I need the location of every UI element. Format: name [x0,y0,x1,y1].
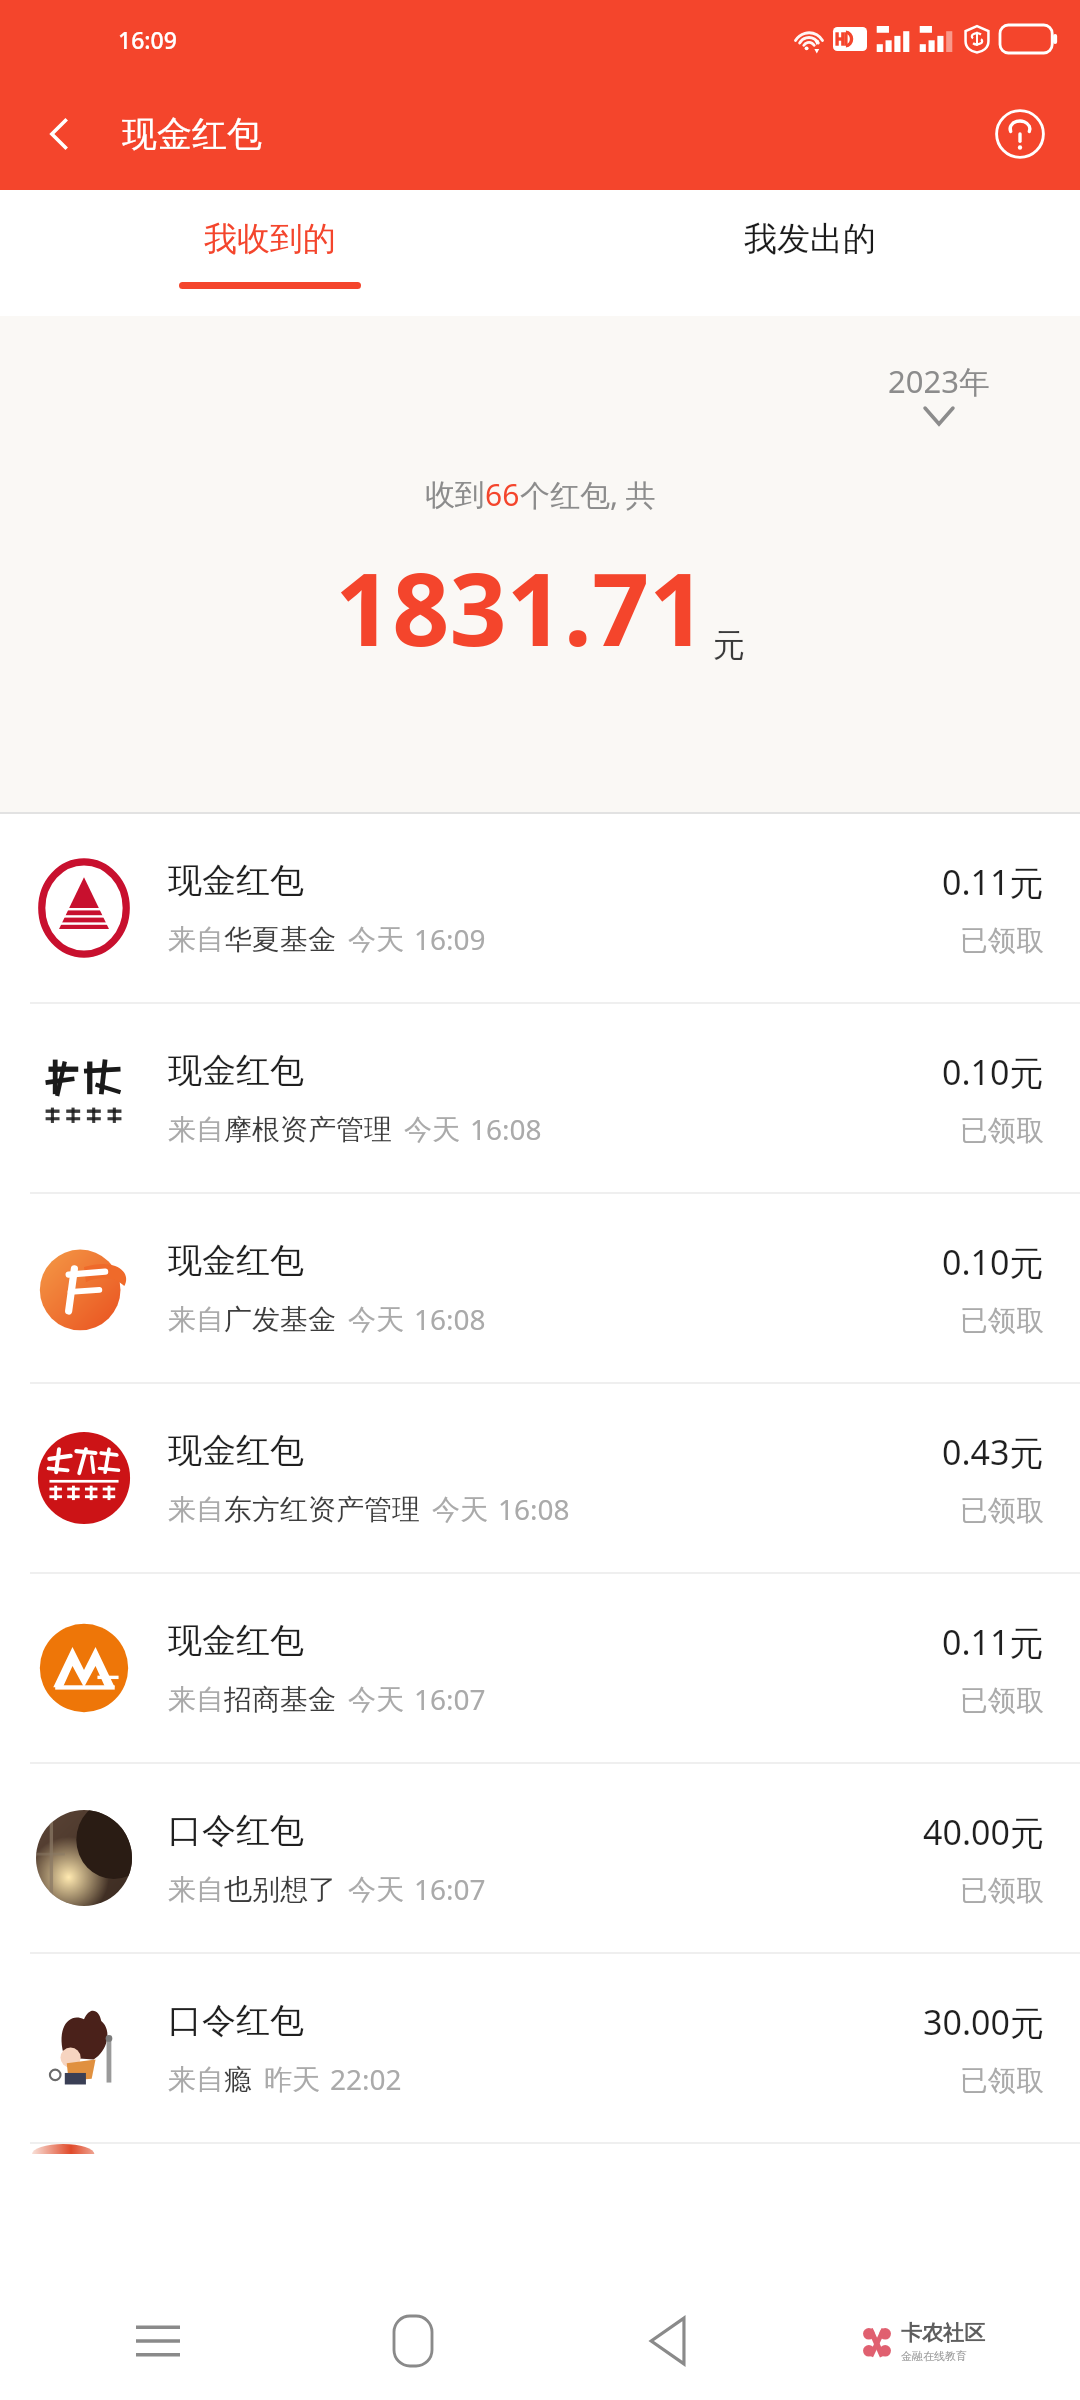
staticText: 今天 [404,1112,460,1147]
staticText: 今天 [348,1872,404,1907]
staticText: 收到 [425,476,485,514]
staticText: 来自 [168,922,224,957]
button[interactable]: 我发出的 [540,190,1080,316]
staticText: 今天 [432,1492,488,1527]
staticText: 东方红资产管理 [224,1492,420,1527]
staticText: 0.11元 [942,859,1044,905]
staticText: 来自 [168,1302,224,1337]
button[interactable]: Recents [30,2282,285,2400]
staticText: 瘾 [224,2062,252,2097]
staticText: 已领取 [960,923,1044,958]
staticText: 来自 [168,1872,224,1907]
staticText: 1831.71 [335,539,707,675]
staticText: 0.10元 [942,1049,1044,1095]
staticText: 16:07 [414,1680,486,1718]
staticText: 华夏基金 [224,922,336,957]
button[interactable]: 现金红包 [0,814,1080,1002]
staticText: 已领取 [960,1873,1044,1908]
button[interactable]: 现金红包 [0,1384,1080,1572]
button[interactable]: Back [540,2282,795,2400]
button[interactable]: 2023年 [888,360,990,424]
staticText: 已领取 [960,1683,1044,1718]
staticText: 现金红包 [168,1239,304,1282]
staticText: 我收到的 [204,218,336,260]
button[interactable]: 现金红包 [0,1574,1080,1762]
staticText: 现金红包 [168,1429,304,1472]
staticText: 已领取 [960,1303,1044,1338]
button[interactable]: 我收到的 [0,190,540,316]
staticText: 0.11元 [942,1619,1044,1665]
staticText: 22:02 [330,2060,402,2098]
staticText: 现金红包 [168,1619,304,1662]
staticText: 16:09 [414,920,486,958]
staticText: 广发基金 [224,1302,336,1337]
staticText: 0.43元 [942,1429,1044,1475]
staticText: 昨天 [264,2062,320,2097]
staticText: 已领取 [960,2063,1044,2098]
staticText: 已领取 [960,1113,1044,1148]
button[interactable]: 口令红包 [0,1954,1080,2142]
staticText: 个红包, 共 [520,474,656,515]
staticText: 来自 [168,2062,224,2097]
button[interactable]: 现金红包 [0,1194,1080,1382]
staticText: 今天 [348,922,404,957]
button[interactable]: 口令红包 [0,1764,1080,1952]
staticText: 已领取 [960,1493,1044,1528]
button[interactable]: 现金红包 [0,1004,1080,1192]
staticText: 来自 [168,1112,224,1147]
button[interactable]: Back [22,96,98,172]
staticText: 摩根资产管理 [224,1112,392,1147]
staticText: 16:08 [498,1490,570,1528]
staticText: 我发出的 [744,218,876,260]
staticText: 卡农社区 [901,2320,985,2346]
staticText: 来自 [168,1492,224,1527]
staticText: 66 [485,474,520,515]
staticText: 口令红包 [168,1999,304,2042]
staticText: 来自 [168,1682,224,1717]
button[interactable]: Home [285,2282,540,2400]
staticText: 招商基金 [224,1682,336,1717]
staticText: 16:07 [414,1870,486,1908]
staticText: 16:08 [414,1300,486,1338]
staticText: 口令红包 [168,1809,304,1852]
staticText: 16:08 [470,1110,542,1148]
staticText: 16:09 [118,24,177,55]
staticText: 40.00元 [923,1809,1044,1855]
staticText: 现金红包 [168,859,304,902]
staticText: 30.00元 [923,1999,1044,2045]
staticText: 也别想了 [224,1872,336,1907]
staticText: 0.10元 [942,1239,1044,1285]
staticText: 现金红包 [122,112,262,156]
staticText: 元 [713,625,745,665]
button[interactable]: Help [984,98,1056,170]
staticText: 今天 [348,1302,404,1337]
staticText: 2023年 [888,360,990,402]
staticText: 金融在线教育 [901,2349,967,2363]
staticText: 今天 [348,1682,404,1717]
staticText: 现金红包 [168,1049,304,1092]
